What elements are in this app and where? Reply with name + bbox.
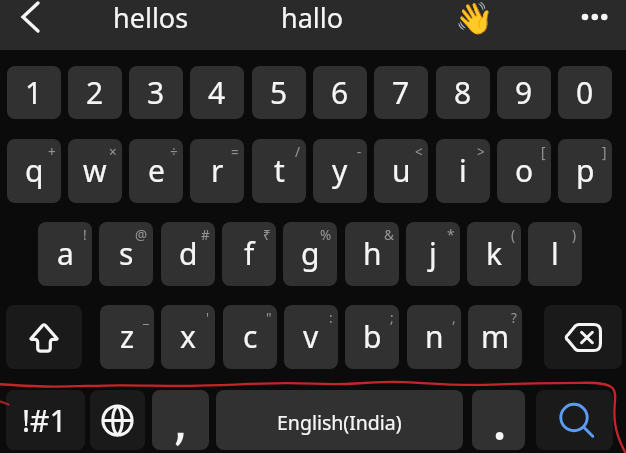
button[interactable]: 6 [313, 66, 367, 119]
staticText: p [576, 150, 595, 191]
button[interactable]: 0 [558, 66, 612, 119]
button[interactable]: s [99, 222, 153, 286]
staticText: = [231, 143, 239, 161]
staticText: : [329, 309, 333, 327]
staticText: < [415, 143, 423, 161]
button[interactable]: Search [536, 390, 613, 450]
staticText: 5 [270, 72, 288, 113]
button[interactable]: t [252, 139, 306, 203]
button[interactable]: v [284, 305, 338, 369]
button[interactable]: Waving hand emoji [452, 0, 496, 39]
button[interactable]: 5 [252, 66, 306, 119]
button[interactable]: e [129, 139, 183, 203]
staticText: k [486, 233, 503, 274]
staticText: r [211, 150, 224, 191]
staticText: q [25, 150, 44, 191]
button[interactable]: z [100, 305, 154, 369]
staticText: a [57, 233, 74, 274]
button[interactable]: More options [572, 0, 620, 40]
staticText: v [303, 316, 319, 357]
staticText: 👋 [455, 0, 494, 36]
staticText: ₹ [263, 226, 271, 244]
button[interactable]: 3 [129, 66, 183, 119]
button[interactable]: u [374, 139, 428, 203]
staticText: 4 [208, 72, 226, 113]
staticText: o [515, 150, 534, 191]
staticText: 8 [454, 72, 472, 113]
staticText: English(India) [277, 409, 402, 436]
staticText: * [447, 226, 455, 244]
button[interactable]: m [468, 305, 522, 369]
button[interactable]: g [283, 222, 337, 286]
button[interactable]: q [7, 139, 61, 203]
staticText: 7 [392, 72, 410, 113]
staticText: i [459, 150, 467, 191]
button[interactable]: 9 [497, 66, 551, 119]
staticText: u [392, 150, 411, 191]
staticText: ) [572, 226, 577, 244]
staticText: × [109, 143, 117, 161]
staticText: ' [206, 309, 210, 327]
staticText: _ [143, 309, 149, 327]
staticText: > [477, 143, 485, 161]
staticText: x [180, 316, 196, 357]
button[interactable]: !#1 [6, 390, 85, 450]
button[interactable]: Change keyboard language [90, 390, 145, 450]
staticText: [ [541, 143, 546, 161]
button[interactable]: Comma [152, 390, 209, 450]
staticText: z [120, 316, 135, 357]
staticText: e [148, 150, 165, 191]
staticText: n [425, 316, 444, 357]
staticText: ; [390, 309, 394, 327]
button[interactable]: f [222, 222, 276, 286]
staticText: j [429, 233, 437, 274]
staticText: d [179, 233, 198, 274]
staticText: !#1 [22, 400, 67, 441]
button[interactable]: Period [472, 390, 525, 450]
button[interactable]: h [345, 222, 399, 286]
button[interactable]: w [68, 139, 122, 203]
button[interactable]: English(India) [216, 390, 463, 450]
button[interactable]: 4 [190, 66, 244, 119]
button[interactable]: hallo [281, 0, 344, 36]
staticText: + [48, 143, 56, 161]
button[interactable]: n [407, 305, 461, 369]
staticText: % [320, 226, 332, 244]
button[interactable]: 7 [374, 66, 428, 119]
staticText: h [363, 233, 382, 274]
button[interactable]: o [497, 139, 551, 203]
button[interactable]: Shift [6, 305, 82, 369]
staticText: 6 [331, 72, 349, 113]
staticText: c [243, 316, 258, 357]
staticText: ] [602, 143, 607, 161]
button[interactable]: i [436, 139, 490, 203]
staticText: @ [135, 226, 148, 244]
staticText: # [201, 226, 210, 244]
button[interactable]: x [161, 305, 215, 369]
staticText: / [295, 143, 301, 161]
button[interactable]: Backspace [544, 305, 622, 369]
button[interactable]: 8 [436, 66, 490, 119]
button[interactable]: l [528, 222, 582, 286]
staticText: " [266, 309, 272, 327]
staticText: 9 [515, 72, 533, 113]
button[interactable]: hellos [113, 0, 189, 36]
button[interactable]: d [161, 222, 215, 286]
button[interactable]: r [190, 139, 244, 203]
button[interactable]: y [313, 139, 367, 203]
button[interactable]: j [406, 222, 460, 286]
button[interactable]: k [467, 222, 521, 286]
button[interactable]: 2 [68, 66, 122, 119]
button[interactable]: b [345, 305, 399, 369]
staticText: 3 [147, 72, 165, 113]
button[interactable]: p [558, 139, 612, 203]
staticText: m [481, 316, 510, 357]
staticText: 0 [576, 72, 594, 113]
button[interactable]: 1 [7, 66, 61, 119]
button[interactable]: a [38, 222, 92, 286]
button[interactable]: Back [6, 0, 56, 50]
staticText: 1 [25, 72, 43, 113]
staticText: ÷ [170, 143, 178, 161]
staticText: b [363, 316, 382, 357]
button[interactable]: c [223, 305, 277, 369]
